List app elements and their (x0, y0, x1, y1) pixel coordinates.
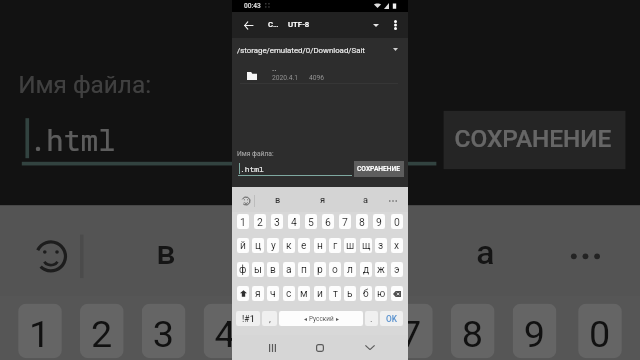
button[interactable]: 7 (389, 304, 433, 358)
button[interactable]: 8 (356, 214, 368, 229)
staticText: 1 (240, 216, 246, 228)
staticText: 9 (524, 311, 545, 354)
button[interactable]: 8 (451, 304, 494, 358)
button[interactable]: More options (387, 12, 403, 38)
button[interactable]: 6 (322, 214, 334, 229)
button[interactable]: Emoji keyboard (236, 191, 256, 210)
button[interactable]: Back (237, 12, 259, 38)
button[interactable]: . (365, 311, 378, 326)
staticText: 9 (376, 216, 382, 228)
button[interactable]: т (329, 286, 341, 301)
button[interactable]: Space, Russian layout (279, 311, 363, 326)
staticText: C… (268, 20, 279, 29)
button[interactable]: Recent apps (258, 335, 286, 360)
button[interactable]: /storage/emulated/0/Download/Sait (232, 37, 408, 61)
button[interactable]: Hide keyboard (356, 335, 384, 360)
button[interactable]: 5 (305, 214, 317, 229)
button[interactable]: Encoding dropdown (367, 12, 385, 38)
staticText: р (317, 264, 323, 276)
button[interactable]: и (314, 286, 326, 301)
button[interactable]: э (391, 262, 403, 277)
button[interactable]: р (314, 262, 326, 277)
button[interactable]: ж (375, 262, 387, 277)
button[interactable]: е (298, 238, 310, 253)
button[interactable]: с (283, 286, 295, 301)
staticText: 4 (214, 311, 236, 354)
staticText: а (476, 231, 498, 271)
button[interactable]: 1 (237, 214, 249, 229)
button[interactable]: 3 (142, 304, 185, 358)
button[interactable]: OK (380, 311, 403, 326)
button[interactable]: з (375, 238, 387, 253)
button[interactable]: п (298, 262, 310, 277)
staticText: с (286, 288, 292, 300)
button[interactable]: ч (267, 286, 279, 301)
button[interactable]: 2 (254, 214, 266, 229)
staticText: д (363, 264, 370, 276)
button[interactable]: Emoji keyboard (14, 220, 87, 289)
button[interactable]: 3 (271, 214, 283, 229)
staticText: щ (362, 240, 371, 252)
staticText: 2020.4.1 (272, 74, 299, 82)
button[interactable]: ю (375, 286, 387, 301)
button[interactable]: .. (232, 61, 408, 84)
button[interactable]: в (267, 262, 279, 277)
staticText: и (317, 288, 323, 300)
button[interactable]: х (391, 238, 403, 253)
staticText: б (363, 288, 369, 300)
staticText: а (363, 194, 369, 205)
staticText: 2 (91, 311, 113, 354)
button[interactable]: !#1 (236, 311, 260, 326)
button[interactable]: д (360, 262, 372, 277)
button[interactable]: 0 (391, 214, 403, 229)
button[interactable]: г (329, 238, 341, 253)
button[interactable]: 5 (265, 304, 309, 358)
staticText: 4 (291, 216, 297, 228)
button[interactable]: у (267, 238, 279, 253)
button[interactable]: ы (252, 262, 264, 277)
staticText: Имя файла: (237, 150, 274, 158)
button[interactable]: к (283, 238, 295, 253)
button[interactable]: ф (237, 262, 249, 277)
button[interactable]: м (298, 286, 310, 301)
button[interactable]: Backspace (391, 286, 403, 301)
staticText: я (320, 231, 342, 271)
staticText: !#1 (242, 314, 255, 324)
button[interactable]: 7 (339, 214, 351, 229)
staticText: ш (346, 240, 355, 252)
button[interactable]: б (360, 286, 372, 301)
staticText: 3 (153, 311, 174, 354)
button[interactable]: Shift (237, 286, 249, 301)
staticText: у (271, 240, 276, 252)
button[interactable]: More suggestions (385, 191, 401, 210)
staticText: UTF-8 (288, 20, 310, 29)
button[interactable]: 9 (373, 214, 385, 229)
staticText: Имя файла: (18, 71, 153, 100)
button[interactable]: 6 (327, 304, 371, 358)
staticText: в (270, 264, 276, 276)
staticText: ь (347, 288, 353, 300)
button[interactable]: 0 (578, 304, 622, 358)
button[interactable]: Home (306, 335, 334, 360)
button[interactable]: я (252, 286, 264, 301)
button[interactable]: 9 (513, 304, 556, 358)
button[interactable]: л (344, 262, 356, 277)
button[interactable]: 1 (18, 304, 62, 358)
button[interactable]: More suggestions (556, 220, 615, 289)
button[interactable]: ц (252, 238, 264, 253)
button[interactable]: 4 (288, 214, 300, 229)
button[interactable]: , (262, 311, 277, 326)
button[interactable]: СОХРАНЕНИЕ (354, 161, 404, 177)
button[interactable]: ш (344, 238, 356, 253)
staticText: м (300, 288, 308, 300)
button[interactable]: н (314, 238, 326, 253)
button[interactable]: ь (344, 286, 356, 301)
button[interactable]: щ (360, 238, 372, 253)
button[interactable]: СОХРАНЕНИЕ (444, 111, 625, 169)
button[interactable]: 2 (80, 304, 124, 358)
button[interactable]: о (329, 262, 341, 277)
button[interactable]: а (283, 262, 295, 277)
button[interactable]: й (237, 238, 249, 253)
staticText: й (240, 240, 246, 252)
button[interactable]: 4 (204, 304, 247, 358)
